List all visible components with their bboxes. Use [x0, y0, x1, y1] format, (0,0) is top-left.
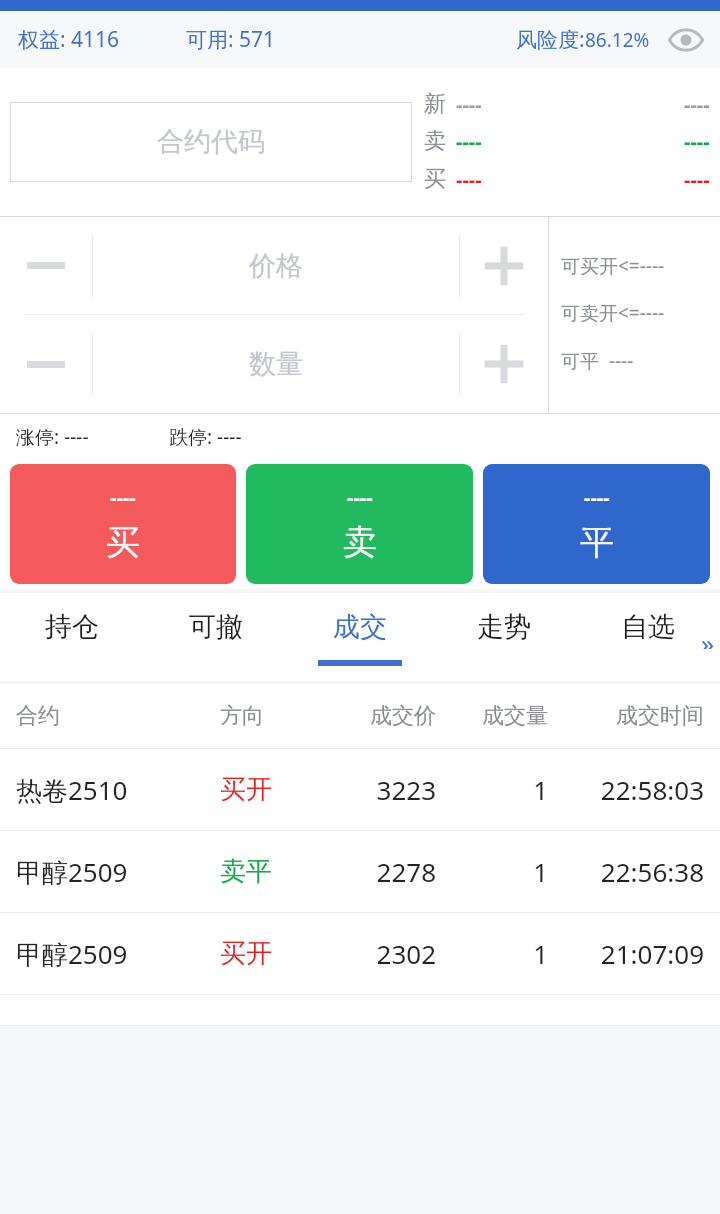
- staticText: 数量: [249, 347, 303, 381]
- staticText: 1: [436, 772, 548, 807]
- staticText: 成交价: [332, 702, 436, 730]
- staticText: 价格: [249, 249, 303, 283]
- button[interactable]: 热卷2510: [0, 749, 720, 831]
- staticText: 甲醇2509: [16, 854, 220, 890]
- staticText: 可撤: [189, 610, 243, 644]
- staticText: 21:07:09: [548, 936, 704, 971]
- button[interactable]: 甲醇2509: [0, 913, 720, 995]
- staticText: 涨停: ----: [16, 424, 89, 450]
- staticText: 卖: [343, 521, 377, 564]
- staticText: 方向: [220, 702, 332, 730]
- staticText: 成交时间: [548, 702, 704, 730]
- staticText: ----: [456, 91, 482, 118]
- staticText: 走势: [477, 610, 531, 644]
- staticText: 甲醇2509: [16, 936, 220, 972]
- staticText: 买开: [220, 773, 332, 806]
- staticText: 可买开<=----: [561, 253, 665, 279]
- staticText: ----: [584, 484, 610, 511]
- staticText: »: [701, 625, 715, 649]
- staticText: 风险度:: [516, 25, 585, 54]
- button[interactable]: 甲醇2509: [0, 831, 720, 913]
- staticText: 成交: [333, 610, 387, 644]
- button[interactable]: 自选: [576, 593, 720, 681]
- staticText: 1: [436, 854, 548, 889]
- button[interactable]: ----: [246, 464, 473, 584]
- staticText: 热卷2510: [16, 772, 220, 808]
- staticText: 可卖开<=----: [561, 300, 665, 326]
- staticText: 持仓: [45, 610, 99, 644]
- button[interactable]: 走势: [432, 593, 576, 681]
- staticText: ----: [684, 128, 710, 155]
- button[interactable]: Increase 数量: [460, 315, 548, 413]
- staticText: 合约: [16, 702, 220, 730]
- staticText: 2278: [332, 854, 436, 889]
- staticText: ----: [684, 166, 710, 193]
- staticText: ----: [110, 484, 136, 511]
- staticText: 可平 ----: [561, 348, 634, 374]
- staticText: 22:58:03: [548, 772, 704, 807]
- staticText: 平: [580, 521, 614, 564]
- staticText: 86.12%: [585, 27, 650, 53]
- staticText: 买: [106, 521, 140, 564]
- staticText: 跌停: ----: [169, 424, 242, 450]
- staticText: 3223: [332, 772, 436, 807]
- staticText: 新: [424, 90, 446, 118]
- button[interactable]: Decrease 数量: [0, 315, 92, 413]
- staticText: 卖: [424, 127, 446, 155]
- staticText: ----: [456, 128, 482, 155]
- button[interactable]: Decrease 价格: [0, 217, 92, 314]
- staticText: ----: [684, 91, 710, 118]
- button[interactable]: 可撤: [144, 593, 288, 681]
- button[interactable]: 价格: [93, 217, 459, 314]
- button[interactable]: 合约代码: [10, 102, 412, 182]
- button[interactable]: Toggle balance visibility: [664, 18, 708, 62]
- button[interactable]: More tabs: [696, 625, 720, 649]
- staticText: 自选: [621, 610, 675, 644]
- button[interactable]: 成交: [288, 593, 432, 681]
- staticText: 1: [436, 936, 548, 971]
- button[interactable]: 数量: [93, 315, 459, 413]
- staticText: 可用: 571: [186, 25, 276, 54]
- staticText: 合约代码: [157, 125, 265, 159]
- button[interactable]: Increase 价格: [460, 217, 548, 314]
- staticText: ----: [456, 166, 482, 193]
- staticText: 22:56:38: [548, 854, 704, 889]
- staticText: 买开: [220, 937, 332, 970]
- button[interactable]: ----: [10, 464, 236, 584]
- staticText: 成交量: [436, 702, 548, 730]
- staticText: 买: [424, 165, 446, 193]
- button[interactable]: ----: [483, 464, 710, 584]
- button[interactable]: 持仓: [0, 593, 144, 681]
- staticText: 权益: 4116: [18, 25, 120, 54]
- staticText: 卖平: [220, 855, 332, 888]
- staticText: ----: [347, 484, 373, 511]
- staticText: 2302: [332, 936, 436, 971]
